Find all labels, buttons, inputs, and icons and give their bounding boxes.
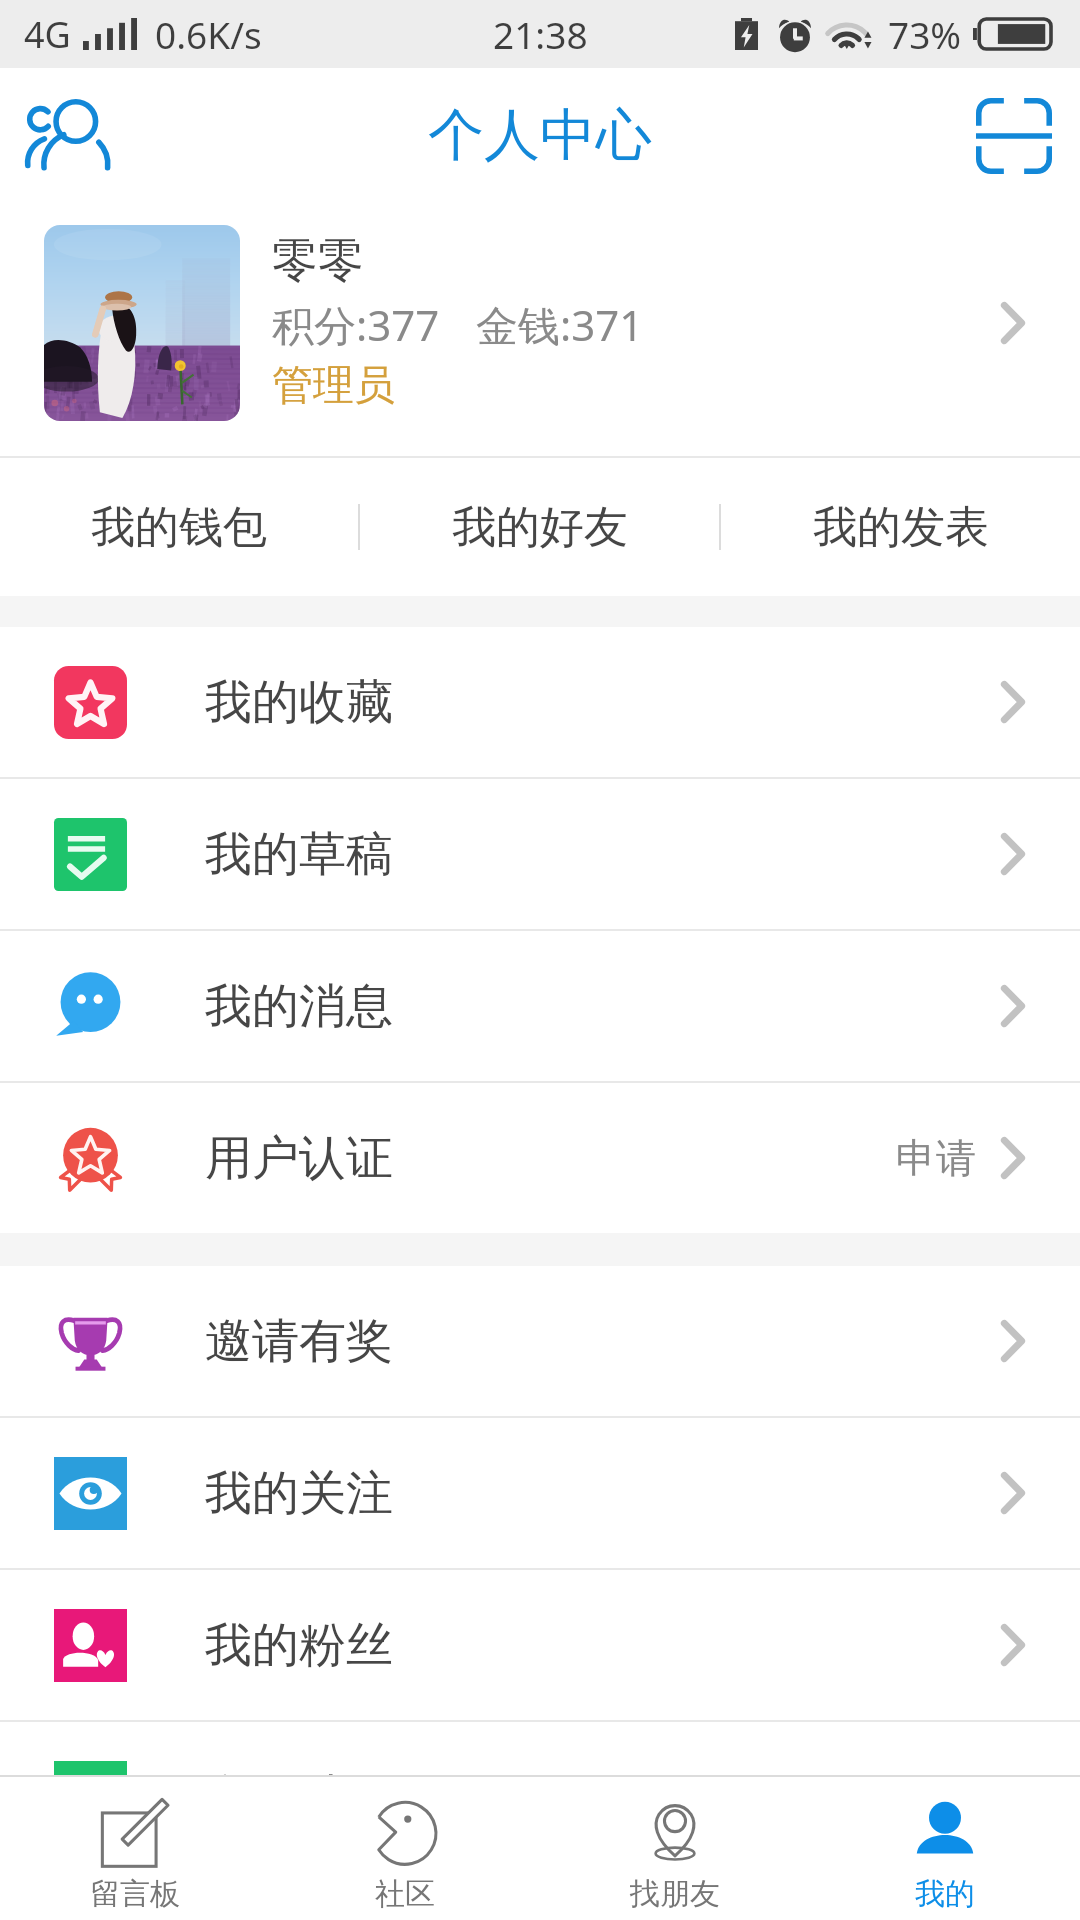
button[interactable]: 留言板 <box>0 1777 270 1920</box>
staticText: 金钱:371 <box>476 296 644 353</box>
button[interactable]: 我的消息 <box>0 931 1080 1081</box>
staticText: 社区 <box>375 1875 435 1913</box>
button[interactable]: 我的钱包 <box>0 458 358 596</box>
staticText: 我的关注 <box>205 1464 393 1523</box>
staticText: 我的好友 <box>452 500 628 555</box>
staticText: 73% <box>888 9 962 59</box>
staticText: 零零 <box>272 232 364 290</box>
staticText: 我的粉丝 <box>205 1616 393 1675</box>
button[interactable]: 我的帖子 <box>0 1722 1080 1775</box>
button[interactable]: 我的好友 <box>360 458 719 596</box>
button[interactable]: Friends <box>0 68 122 190</box>
button[interactable]: 零零 <box>0 190 1080 456</box>
button[interactable]: 找朋友 <box>540 1777 810 1920</box>
button[interactable]: 用户认证 <box>0 1083 1080 1233</box>
staticText: 用户认证 <box>205 1129 393 1188</box>
staticText: 21:38 <box>493 9 588 59</box>
staticText: 积分:377 <box>272 296 440 353</box>
staticText: 我的消息 <box>205 977 393 1036</box>
staticText: 找朋友 <box>630 1875 720 1913</box>
staticText: 申请 <box>896 1133 976 1183</box>
button[interactable]: 我的收藏 <box>0 627 1080 777</box>
staticText: 4G <box>24 10 71 59</box>
staticText: 留言板 <box>90 1875 180 1913</box>
staticText: 个人中心 <box>428 100 652 171</box>
staticText: 0.6K/s <box>155 9 262 59</box>
staticText: 我的 <box>915 1875 975 1913</box>
button[interactable]: 社区 <box>270 1777 540 1920</box>
button[interactable]: 我的粉丝 <box>0 1570 1080 1720</box>
staticText: 我的帖子 <box>205 1768 393 1775</box>
staticText: 我的收藏 <box>205 673 393 732</box>
button[interactable]: 我的草稿 <box>0 779 1080 929</box>
button[interactable]: Scan <box>958 73 1070 185</box>
button[interactable]: 我的 <box>810 1777 1080 1920</box>
button[interactable]: 我的关注 <box>0 1418 1080 1568</box>
button[interactable]: 我的发表 <box>721 458 1080 596</box>
staticText: 我的草稿 <box>205 825 393 884</box>
staticText: 邀请有奖 <box>205 1312 393 1371</box>
staticText: 管理员 <box>272 360 395 412</box>
staticText: 我的发表 <box>813 500 989 555</box>
staticText: 我的钱包 <box>91 500 267 555</box>
button[interactable]: 邀请有奖 <box>0 1266 1080 1416</box>
